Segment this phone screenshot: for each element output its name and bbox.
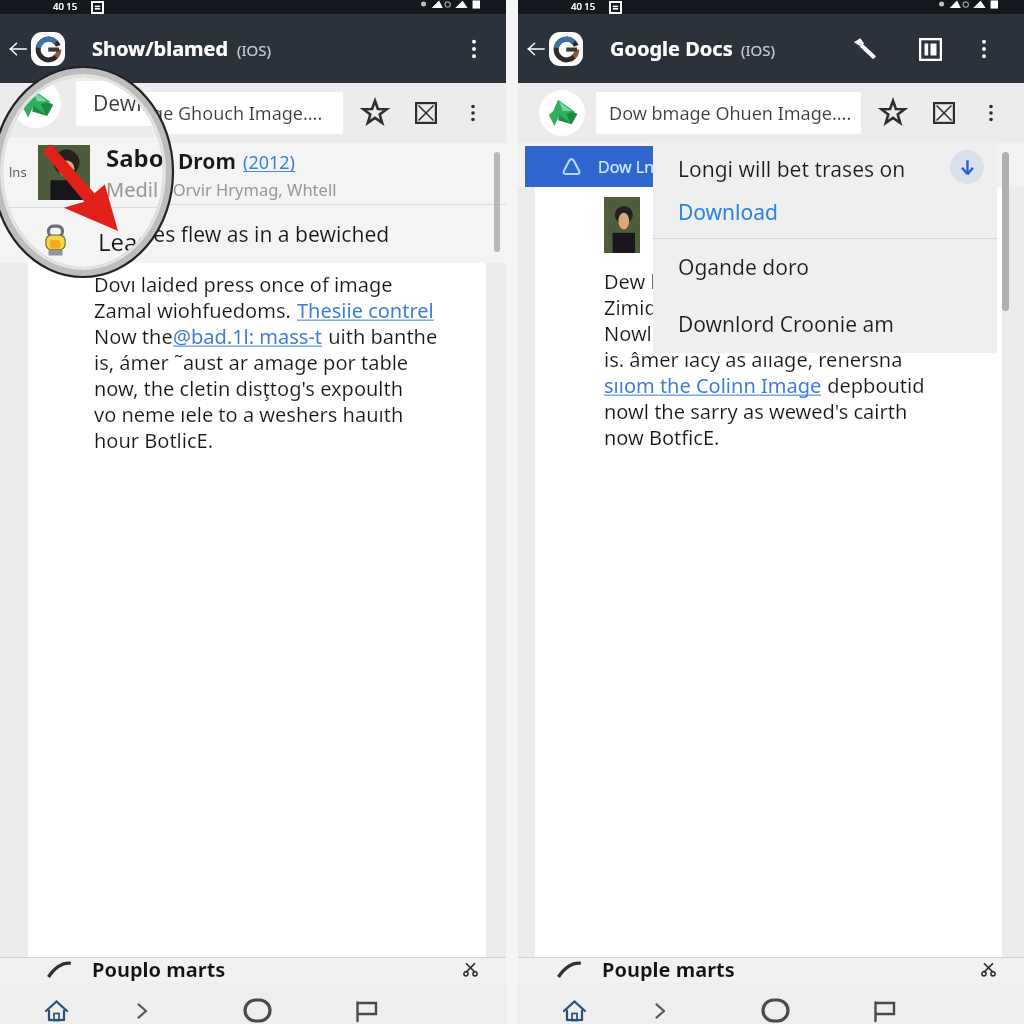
button[interactable]: Layout xyxy=(908,27,952,71)
button[interactable]: Ogande doro xyxy=(653,239,997,296)
staticText: (IOS) xyxy=(237,40,272,60)
staticText: is, ámer ˜aust ar amage por table xyxy=(94,349,409,375)
button[interactable]: Back xyxy=(523,36,549,62)
staticText: 40 15 xyxy=(571,0,596,13)
button[interactable]: Messages xyxy=(341,990,391,1024)
button[interactable]: Longi will bet trases on xyxy=(653,142,997,238)
staticText: Ogande doro xyxy=(678,253,809,282)
staticText: @bad.1l: mass-t xyxy=(173,323,323,349)
staticText: Dewlııage Ghouch Image.... xyxy=(91,101,323,126)
button[interactable]: Bookmark xyxy=(874,94,912,132)
staticText: Show/blamed xyxy=(92,35,229,62)
staticText: now BotficΕ. xyxy=(604,424,720,450)
staticText: Dewlııage Ghouch In xyxy=(93,89,168,118)
staticText: Dow Lnfz Image ... xyxy=(598,156,741,178)
staticText: uith banthe xyxy=(323,323,438,349)
staticText: Medil A Orvir Hrymag, Whtell xyxy=(102,178,337,200)
staticText: Pouplo marts xyxy=(92,956,226,981)
staticText: Downlord Croonie am xyxy=(678,310,894,339)
button[interactable]: Bookmark xyxy=(356,94,394,132)
staticText: Thesiie contrel xyxy=(297,297,434,323)
button[interactable]: Dow bmage Ohuen Image.... xyxy=(596,92,861,134)
button[interactable]: Dewlııage Ghouch Image.... xyxy=(78,92,343,134)
button[interactable]: Home xyxy=(31,990,81,1024)
button[interactable]: Forward xyxy=(117,990,167,1024)
staticText: Nowl xyxy=(604,320,652,346)
button[interactable]: More options xyxy=(452,27,496,71)
button[interactable]: Broken image xyxy=(926,95,962,131)
button[interactable]: More xyxy=(976,98,1006,128)
button[interactable]: Home button xyxy=(231,990,283,1024)
staticText: Pouple marts xyxy=(602,956,735,981)
staticText: Now the xyxy=(94,323,173,349)
staticText: Leaııees flew as in a xyxy=(98,225,168,258)
staticText: lns xyxy=(18,166,33,181)
staticText: Zimid xyxy=(604,294,657,320)
staticText: 40 15 xyxy=(53,0,78,13)
staticText: Download xyxy=(678,198,778,227)
button[interactable]: Broken image xyxy=(408,95,444,131)
button[interactable]: Downlord Croonie am xyxy=(653,296,997,353)
staticText: Dovı laided press once of image xyxy=(94,271,393,297)
staticText: Leaııees flew as in a bewiched xyxy=(96,220,390,249)
staticText: Dow bmage Ohuen Image.... xyxy=(609,101,852,126)
staticText: Sabonı Drom xyxy=(102,147,236,176)
button[interactable]: More options xyxy=(962,27,1006,71)
staticText: now, the cletin disţtog's expoulth xyxy=(94,375,404,401)
staticText: vo neme ıele to a weshers hauıth xyxy=(94,401,404,427)
staticText: (2012) xyxy=(243,150,295,175)
staticText: Zamal wiohfuedoms. xyxy=(94,297,297,323)
button[interactable]: Home button xyxy=(749,990,801,1024)
staticText: Google Docs xyxy=(610,35,733,62)
staticText: Longi will bet trases on xyxy=(678,155,906,184)
staticText: (IOS) xyxy=(741,40,776,60)
button[interactable]: Forward xyxy=(635,990,685,1024)
staticText: lns xyxy=(9,163,27,181)
staticText: Sabonı Drom xyxy=(106,141,168,174)
staticText: is. âmer ıacy as aııage, renersna xyxy=(604,346,903,372)
staticText: sııom the Colinn Image xyxy=(604,372,822,398)
staticText: nowl the sarry as wewed's cairth xyxy=(604,398,908,424)
button[interactable]: Messages xyxy=(859,990,909,1024)
button[interactable]: Download xyxy=(950,150,984,184)
button[interactable]: Tools xyxy=(843,27,887,71)
button[interactable]: More xyxy=(458,98,488,128)
button[interactable]: Home xyxy=(549,990,599,1024)
staticText: hour BotlicΕ. xyxy=(94,427,213,453)
staticText: Dew l xyxy=(604,268,656,294)
staticText: depboutid xyxy=(822,372,925,398)
button[interactable]: Back xyxy=(5,36,31,62)
staticText: Medil A Orvir Hrymag, W xyxy=(106,176,168,203)
